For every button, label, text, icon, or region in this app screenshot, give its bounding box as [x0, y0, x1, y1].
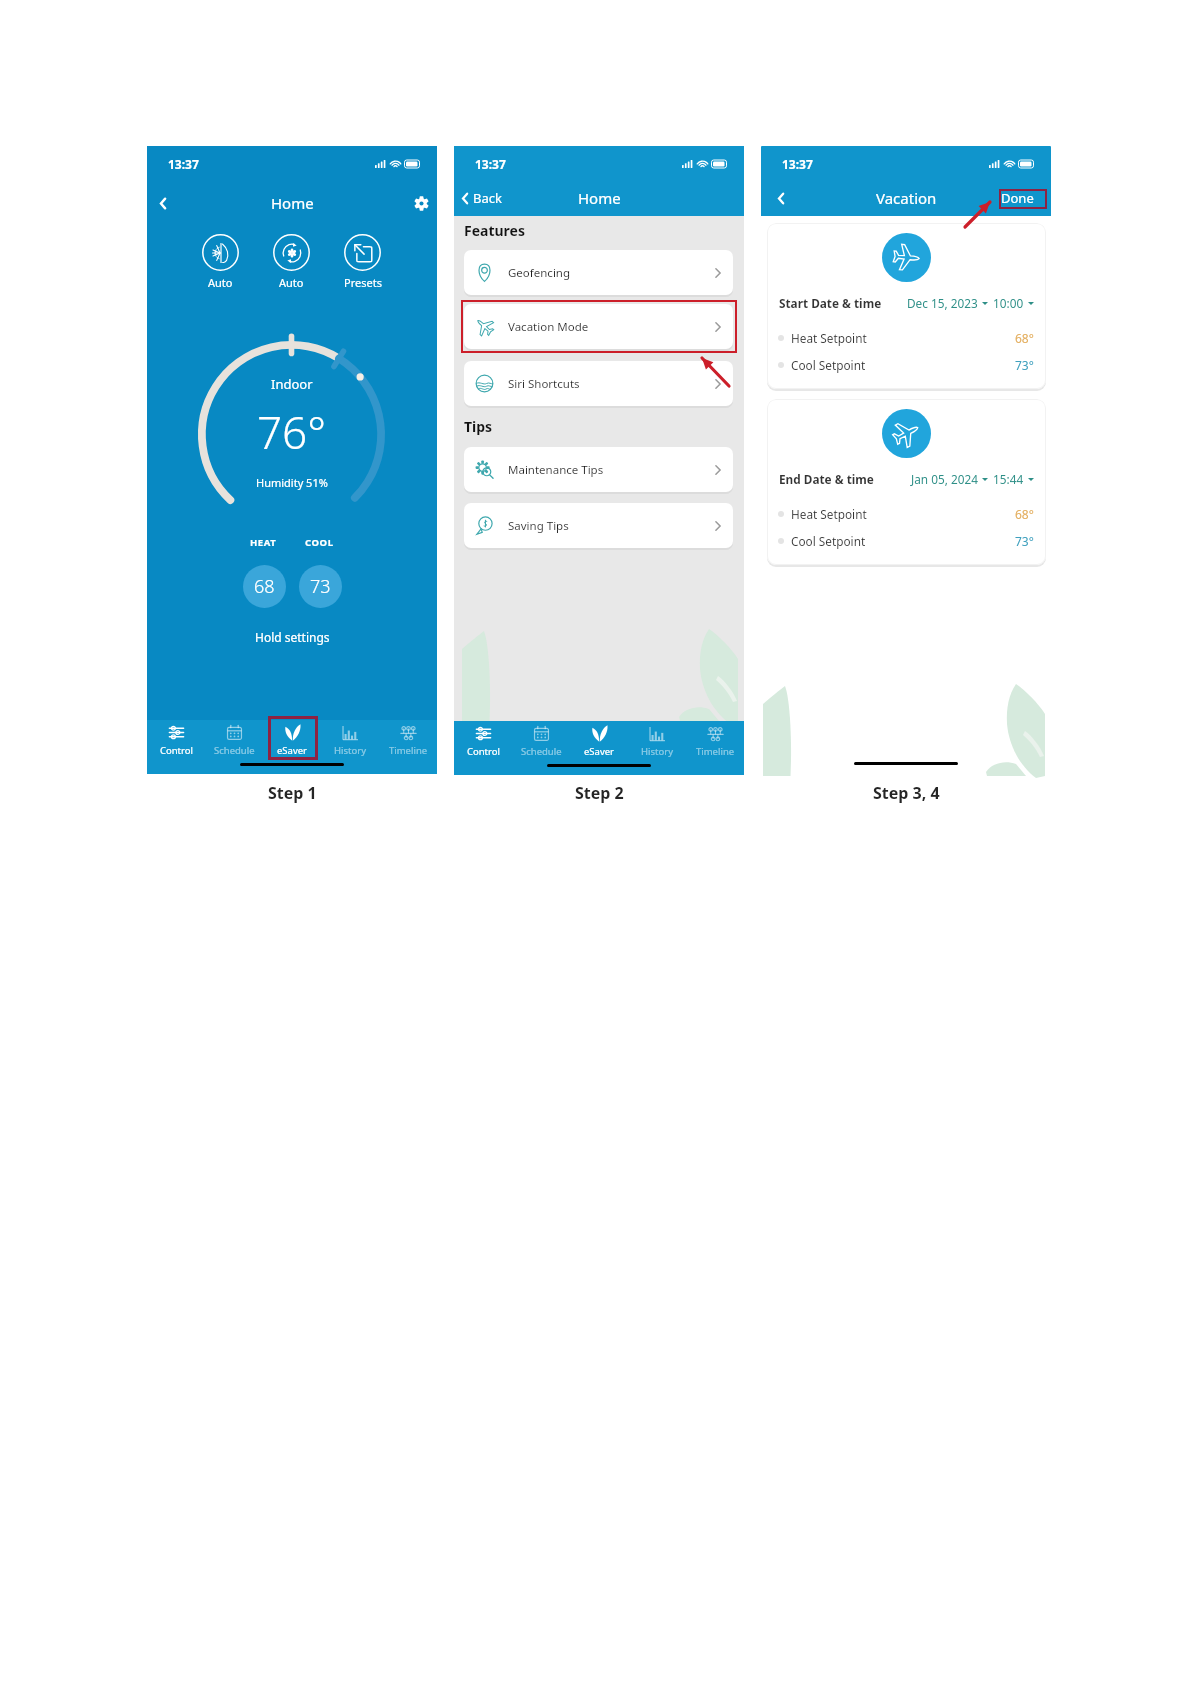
staticText: 68°: [1015, 506, 1034, 522]
button[interactable]: Timeline: [686, 721, 744, 763]
staticText: 73: [310, 574, 331, 599]
staticText: History: [641, 745, 673, 758]
button[interactable]: Schedule: [205, 720, 263, 762]
button[interactable]: Back: [148, 188, 178, 218]
staticText: Dec 15, 2023: [907, 295, 978, 311]
button[interactable]: Done: [997, 184, 1038, 212]
staticText: eSaver: [584, 745, 615, 758]
staticText: Schedule: [214, 744, 255, 757]
staticText: Features: [464, 221, 525, 240]
button[interactable]: Cool Setpoint: [767, 530, 1046, 552]
staticText: Home: [578, 188, 621, 208]
button[interactable]: 73: [299, 565, 342, 608]
staticText: Saving Tips: [508, 518, 569, 534]
staticText: Start Date & time: [779, 295, 882, 311]
button[interactable]: Control: [454, 721, 512, 763]
button[interactable]: Heat Setpoint: [767, 503, 1046, 525]
staticText: End Date & time: [779, 471, 874, 487]
staticText: Cool Setpoint: [791, 357, 866, 373]
button[interactable]: History: [321, 720, 379, 762]
button[interactable]: Hold settings: [249, 626, 336, 648]
staticText: Timeline: [389, 744, 428, 757]
button[interactable]: Settings: [407, 189, 435, 217]
staticText: Control: [467, 745, 500, 758]
button[interactable]: Back: [767, 184, 795, 212]
button[interactable]: Cool Setpoint: [767, 354, 1046, 376]
staticText: Hold settings: [255, 629, 330, 645]
staticText: Jan 05, 2024: [911, 471, 978, 487]
staticText: Auto: [279, 275, 304, 290]
staticText: Heat Setpoint: [791, 330, 867, 346]
staticText: Control: [160, 744, 193, 757]
staticText: Cool Setpoint: [791, 533, 866, 549]
staticText: 13:37: [782, 156, 813, 172]
staticText: Done: [1001, 189, 1034, 207]
button[interactable]: Auto: [185, 234, 256, 290]
staticText: eSaver: [277, 744, 308, 757]
button[interactable]: 68: [243, 565, 286, 608]
staticText: Siri Shortcuts: [508, 376, 580, 392]
staticText: Geofencing: [508, 265, 571, 281]
button[interactable]: Heat Setpoint: [767, 327, 1046, 349]
staticText: Presets: [344, 275, 382, 290]
button[interactable]: History: [628, 721, 686, 763]
button[interactable]: Presets: [327, 234, 398, 290]
staticText: HEAT: [250, 536, 277, 549]
staticText: 76°: [257, 402, 327, 462]
staticText: Tips: [464, 417, 493, 436]
staticText: Heat Setpoint: [791, 506, 867, 522]
staticText: 68: [254, 574, 275, 599]
staticText: 13:37: [168, 156, 199, 172]
button[interactable]: eSaver: [570, 721, 628, 763]
staticText: 15:44: [993, 471, 1024, 487]
staticText: Step 3, 4: [873, 782, 940, 804]
staticText: Step 2: [575, 782, 624, 804]
staticText: Back: [473, 189, 502, 207]
button[interactable]: Schedule: [512, 721, 570, 763]
button[interactable]: Siri Shortcuts: [464, 361, 733, 406]
staticText: 73°: [1015, 357, 1034, 373]
staticText: Step 1: [268, 782, 317, 804]
staticText: History: [334, 744, 366, 757]
staticText: COOL: [305, 536, 334, 549]
button[interactable]: Timeline: [379, 720, 437, 762]
staticText: Maintenance Tips: [508, 462, 604, 478]
staticText: Timeline: [696, 745, 735, 758]
button[interactable]: Geofencing: [464, 250, 733, 295]
staticText: Home: [271, 193, 314, 213]
button[interactable]: Control: [147, 720, 205, 762]
button[interactable]: eSaver: [263, 720, 321, 762]
staticText: Vacation Mode: [508, 319, 589, 335]
button[interactable]: Maintenance Tips: [464, 447, 733, 492]
staticText: 73°: [1015, 533, 1034, 549]
button[interactable]: Dec 15, 2023: [907, 295, 1034, 311]
staticText: 13:37: [475, 156, 506, 172]
staticText: 68°: [1015, 330, 1034, 346]
staticText: Vacation: [876, 188, 937, 208]
button[interactable]: Auto: [256, 234, 327, 290]
button[interactable]: Saving Tips: [464, 503, 733, 548]
staticText: Auto: [208, 275, 233, 290]
staticText: Indoor: [271, 375, 313, 393]
button[interactable]: Jan 05, 2024: [911, 471, 1034, 487]
button[interactable]: Vacation Mode: [464, 304, 733, 349]
button[interactable]: Back: [459, 184, 505, 212]
staticText: 10:00: [993, 295, 1024, 311]
staticText: Humidity 51%: [256, 475, 328, 490]
staticText: Schedule: [521, 745, 562, 758]
